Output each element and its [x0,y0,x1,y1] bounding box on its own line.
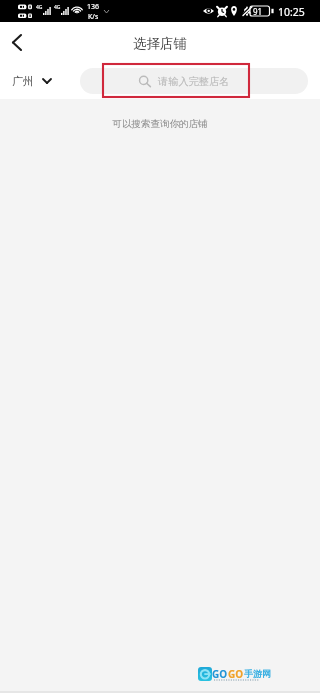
staticText: 广州 [12,74,34,88]
staticText: K/s [88,12,99,22]
staticText: 可以搜索查询你的店铺 [0,118,320,130]
staticText: 4G [54,4,61,11]
staticText: 4G [36,4,43,11]
button[interactable]: Back [0,22,34,62]
staticText: 91 [253,6,263,16]
button[interactable]: 广州 [12,74,52,88]
staticText: 手游网 [244,668,271,679]
staticText: 请输入完整店名 [158,75,230,88]
staticText: GO [228,667,244,681]
staticText: 选择店铺 [133,35,187,52]
staticText: 10:25 [278,5,305,19]
staticText: 136 [87,2,100,12]
staticText: GO [212,667,228,681]
button[interactable]: 请输入完整店名 [80,68,308,94]
